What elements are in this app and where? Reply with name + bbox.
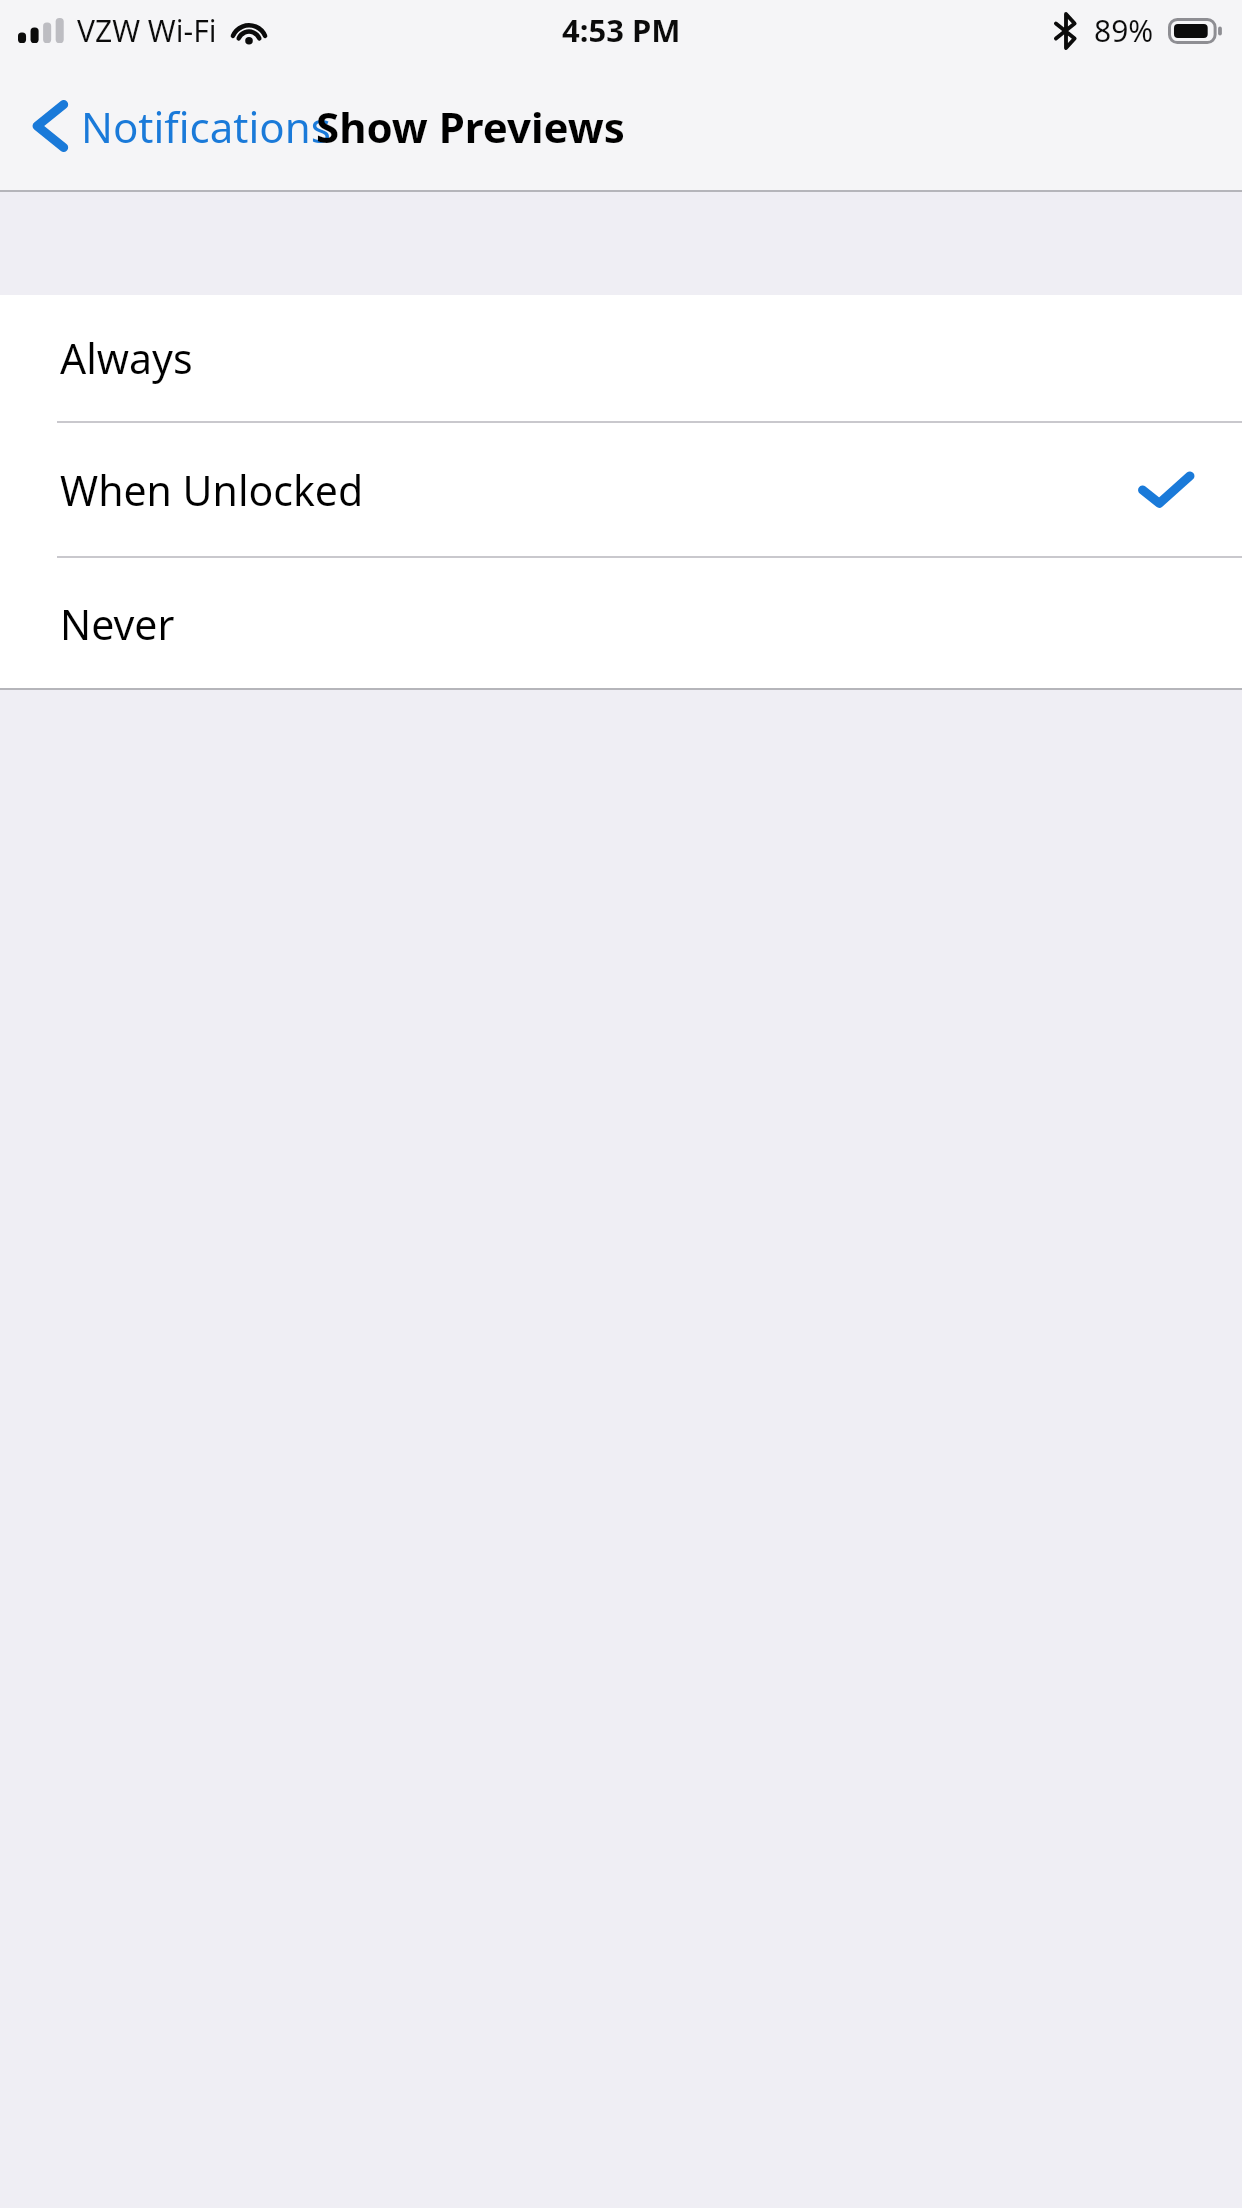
staticText: Never xyxy=(60,596,175,652)
staticText: 89% xyxy=(1094,10,1154,51)
staticText: Show Previews xyxy=(316,98,625,155)
staticText: Notifications xyxy=(81,98,331,155)
staticText: Always xyxy=(60,330,193,386)
button[interactable]: Always xyxy=(0,295,1242,421)
staticText: When Unlocked xyxy=(60,462,364,518)
other: Back to Notifications xyxy=(32,99,68,153)
button[interactable]: Back to Notifications xyxy=(0,71,351,181)
staticText: 4:53 PM xyxy=(562,9,681,51)
staticText: VZW Wi-Fi xyxy=(77,10,217,51)
button[interactable]: When Unlocked xyxy=(0,423,1242,556)
button[interactable]: Never xyxy=(0,558,1242,690)
